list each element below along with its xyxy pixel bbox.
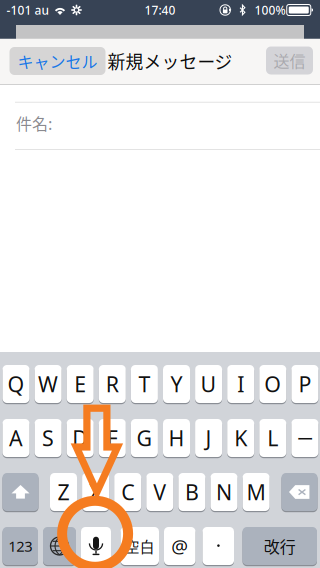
- button[interactable]: T: [131, 364, 158, 404]
- button[interactable]: 123: [2, 526, 38, 566]
- button[interactable]: D: [67, 418, 94, 458]
- button[interactable]: M: [243, 472, 270, 512]
- staticText: S: [42, 424, 54, 452]
- staticText: au: [34, 2, 49, 18]
- button[interactable]: Shift: [2, 472, 38, 512]
- button[interactable]: 空白: [120, 526, 159, 566]
- staticText: M: [247, 478, 266, 506]
- staticText: F: [107, 424, 118, 452]
- staticText: E: [74, 370, 86, 398]
- staticText: W: [38, 370, 58, 398]
- button[interactable]: ・: [202, 526, 234, 566]
- button[interactable]: キャンセル: [9, 47, 105, 75]
- button[interactable]: U: [195, 364, 222, 404]
- staticText: ー: [296, 425, 313, 451]
- staticText: Q: [7, 370, 24, 398]
- button[interactable]: W: [35, 364, 62, 404]
- staticText: 新規メッセージ: [107, 48, 232, 74]
- button[interactable]: ー: [291, 418, 318, 458]
- staticText: N: [216, 478, 232, 506]
- staticText: H: [168, 424, 184, 452]
- button[interactable]: 改行: [242, 526, 317, 566]
- staticText: C: [121, 478, 134, 506]
- staticText: @: [171, 534, 188, 558]
- staticText: 空白: [125, 535, 155, 557]
- staticText: J: [206, 424, 212, 452]
- button[interactable]: P: [291, 364, 318, 404]
- button[interactable]: G: [131, 418, 158, 458]
- staticText: I: [237, 370, 244, 398]
- button[interactable]: C: [114, 472, 141, 512]
- staticText: 件名:: [16, 111, 52, 135]
- button[interactable]: Delete: [281, 472, 317, 512]
- button[interactable]: Dictation: [81, 526, 111, 566]
- staticText: X: [89, 478, 102, 506]
- button[interactable]: F: [99, 418, 126, 458]
- button[interactable]: X: [82, 472, 109, 512]
- button[interactable]: S: [35, 418, 62, 458]
- staticText: -101: [6, 2, 31, 18]
- staticText: K: [234, 424, 247, 452]
- staticText: 123: [8, 536, 32, 556]
- staticText: U: [201, 370, 217, 398]
- button[interactable]: 送信: [266, 46, 313, 74]
- button[interactable]: N: [210, 472, 237, 512]
- button[interactable]: K: [227, 418, 254, 458]
- staticText: 改行: [264, 534, 296, 558]
- button[interactable]: Q: [2, 364, 29, 404]
- staticText: Y: [170, 370, 182, 398]
- staticText: 17:40: [144, 2, 175, 18]
- staticText: T: [138, 370, 150, 398]
- button[interactable]: A: [2, 418, 29, 458]
- button[interactable]: R: [99, 364, 126, 404]
- button[interactable]: @: [164, 526, 195, 566]
- staticText: D: [72, 424, 88, 452]
- button[interactable]: L: [259, 418, 286, 458]
- button[interactable]: Y: [163, 364, 190, 404]
- staticText: Z: [57, 478, 69, 506]
- button[interactable]: B: [178, 472, 205, 512]
- button[interactable]: O: [259, 364, 286, 404]
- staticText: R: [106, 370, 119, 398]
- button[interactable]: J: [195, 418, 222, 458]
- staticText: 100%: [254, 2, 285, 18]
- button[interactable]: Z: [50, 472, 77, 512]
- staticText: 送信: [273, 49, 305, 72]
- staticText: キャンセル: [17, 49, 97, 73]
- staticText: A: [9, 424, 23, 452]
- staticText: G: [136, 424, 152, 452]
- button[interactable]: Next keyboard: [43, 526, 76, 566]
- button[interactable]: V: [146, 472, 173, 512]
- staticText: L: [267, 424, 278, 452]
- button[interactable]: H: [163, 418, 190, 458]
- staticText: P: [298, 370, 311, 398]
- button[interactable]: E: [67, 364, 94, 404]
- staticText: B: [185, 478, 199, 506]
- staticText: V: [153, 478, 166, 506]
- staticText: ・: [210, 536, 226, 556]
- staticText: O: [264, 370, 281, 398]
- button[interactable]: I: [227, 364, 254, 404]
